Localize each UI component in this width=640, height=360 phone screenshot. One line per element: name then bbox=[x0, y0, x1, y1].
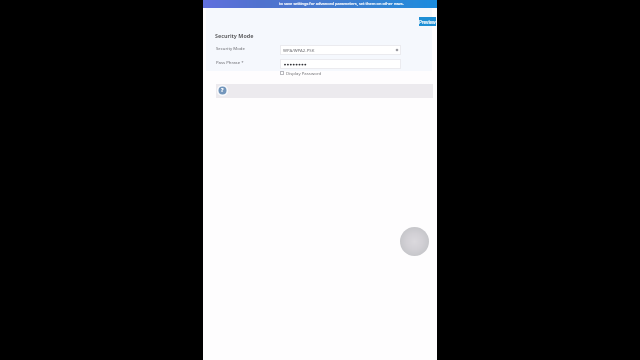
staticText: Security Mode bbox=[216, 45, 245, 51]
staticText: Display Password bbox=[286, 70, 322, 76]
button[interactable] bbox=[280, 59, 401, 69]
staticText: ? bbox=[221, 87, 224, 94]
button[interactable] bbox=[216, 84, 433, 98]
button[interactable]: Display Password bbox=[280, 70, 322, 76]
staticText: Pass Phrase * bbox=[216, 59, 244, 65]
button[interactable]: Help bbox=[216, 84, 229, 97]
staticText: to save settings for advanced parameters… bbox=[279, 1, 404, 6]
staticText: Security Mode bbox=[215, 32, 254, 39]
staticText: WPA/WPA2-PSK bbox=[283, 47, 315, 53]
button[interactable]: to save settings for advanced parameters… bbox=[203, 0, 437, 8]
button[interactable]: WPA/WPA2-PSK bbox=[280, 45, 401, 55]
staticText: Preview bbox=[419, 19, 436, 25]
button[interactable]: Assistive touch bbox=[400, 227, 429, 256]
button[interactable]: Preview bbox=[419, 17, 436, 26]
